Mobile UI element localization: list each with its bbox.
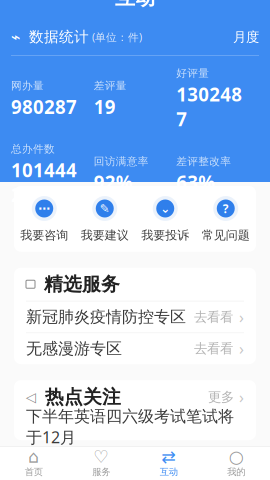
button[interactable]: ✎: [74, 195, 135, 243]
button[interactable]: ?: [195, 195, 256, 243]
staticText: 去看看: [194, 309, 233, 325]
button[interactable]: ⇄: [135, 449, 202, 478]
button[interactable]: ♡: [67, 449, 135, 478]
staticText: (单位：件): [92, 30, 142, 44]
button[interactable]: 月度: [233, 29, 259, 45]
staticText: 精选服务: [44, 273, 120, 296]
button[interactable]: 新冠肺炎疫情防控专区: [14, 301, 256, 332]
staticText: 去看看: [194, 340, 233, 357]
staticText: 常见问题: [202, 228, 250, 243]
staticText: 好评量: [176, 67, 209, 80]
staticText: 差评量: [94, 79, 127, 92]
button[interactable]: 无感漫游专区: [14, 333, 256, 364]
staticText: 1014442: [11, 157, 77, 207]
button[interactable]: ○: [202, 449, 270, 478]
staticText: 首页: [25, 466, 43, 478]
button[interactable]: ⋯: [14, 195, 74, 243]
staticText: 无感漫游专区: [26, 339, 122, 358]
button[interactable]: 更多: [208, 386, 244, 408]
staticText: ♡: [93, 447, 109, 467]
staticText: 63%: [176, 170, 215, 195]
staticText: ✎: [100, 202, 110, 215]
staticText: 回访满意率: [94, 155, 149, 168]
staticText: 我的: [227, 466, 245, 478]
staticText: 我要咨询: [20, 228, 68, 243]
staticText: ⌂: [28, 447, 39, 467]
staticText: 1302487: [176, 82, 242, 131]
staticText: ⇄: [161, 447, 176, 467]
staticText: ›: [239, 338, 244, 359]
staticText: ○: [229, 447, 244, 467]
staticText: 92%: [94, 170, 133, 195]
staticText: 我要投诉: [141, 228, 189, 243]
button[interactable]: ⌂: [0, 449, 67, 478]
button[interactable]: ⌄: [135, 195, 195, 243]
staticText: ›: [239, 306, 244, 327]
staticText: 更多: [208, 389, 234, 405]
staticText: 互动: [160, 466, 178, 478]
staticText: 新冠肺炎疫情防控专区: [26, 307, 186, 327]
staticText: 总办件数: [11, 142, 55, 155]
staticText: 我要建议: [81, 228, 129, 243]
button[interactable]: 下半年英语四六级考试笔试将于12月: [14, 414, 256, 440]
staticText: 服务: [92, 466, 110, 478]
staticText: ◁: [26, 390, 36, 405]
staticText: ⌄: [160, 202, 170, 215]
staticText: 差评整改率: [176, 155, 231, 168]
staticText: ⋯: [38, 202, 50, 215]
staticText: 网办量: [11, 79, 44, 92]
staticText: ?: [223, 200, 229, 216]
staticText: 下半年英语四六级考试笔试将于12月: [26, 407, 234, 448]
staticText: 热点关注: [45, 386, 121, 409]
staticText: 数据统计: [29, 28, 89, 46]
staticText: 19: [94, 94, 116, 119]
staticText: ›: [239, 386, 244, 408]
staticText: 互动: [115, 0, 155, 10]
staticText: 月度: [233, 29, 259, 45]
staticText: ⌁: [11, 28, 21, 46]
staticText: 980287: [11, 94, 77, 119]
